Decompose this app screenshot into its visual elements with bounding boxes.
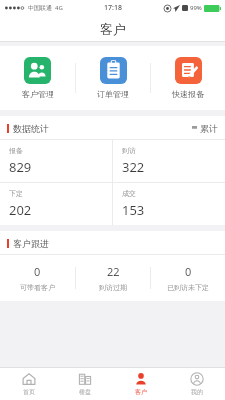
staticText: 客户 xyxy=(100,21,126,37)
staticText: 客户管理 xyxy=(22,89,54,99)
staticText: 报备 xyxy=(9,146,23,155)
staticText: 到访过期 xyxy=(99,283,127,292)
staticText: 快速报备 xyxy=(172,89,204,99)
button[interactable]: 楼盘 xyxy=(57,368,113,400)
staticText: 202 xyxy=(9,201,32,219)
staticText: 可带看客户 xyxy=(20,283,55,292)
staticText: 到访 xyxy=(122,146,136,155)
staticText: 0 xyxy=(34,264,41,279)
staticText: 17:18 xyxy=(104,3,122,13)
staticText: 数据统计 xyxy=(13,123,49,134)
staticText: 首页 xyxy=(23,388,35,396)
button[interactable]: 0 xyxy=(151,255,225,301)
button[interactable]: 累计 xyxy=(192,123,218,134)
button[interactable]: 成交 xyxy=(113,183,225,225)
button[interactable]: 下定 xyxy=(0,183,112,225)
staticText: 322 xyxy=(122,158,145,176)
staticText: 订单管理 xyxy=(97,89,129,99)
button[interactable]: 快速报备 xyxy=(151,46,225,110)
button[interactable]: 我的 xyxy=(169,368,225,400)
staticText: 客户 xyxy=(135,388,147,396)
staticText: 中国联通 xyxy=(28,4,52,12)
staticText: 下定 xyxy=(9,189,23,198)
staticText: 客户跟进 xyxy=(13,238,49,249)
staticText: 4G xyxy=(55,4,63,12)
staticText: 829 xyxy=(9,158,32,176)
staticText: 成交 xyxy=(122,189,136,198)
button[interactable]: 订单管理 xyxy=(76,46,150,110)
button[interactable]: 客户 xyxy=(113,368,169,400)
staticText: 我的 xyxy=(191,388,203,396)
staticText: 累计 xyxy=(200,123,218,134)
button[interactable]: 报备 xyxy=(0,140,112,182)
staticText: 99% xyxy=(190,4,202,12)
staticText: 楼盘 xyxy=(79,388,91,396)
staticText: 153 xyxy=(122,201,145,219)
button[interactable]: 客户管理 xyxy=(0,46,75,110)
button[interactable]: 0 xyxy=(0,255,75,301)
staticText: 0 xyxy=(185,264,192,279)
button[interactable]: 22 xyxy=(76,255,150,301)
staticText: 22 xyxy=(107,264,120,279)
button[interactable]: 首页 xyxy=(0,368,57,400)
button[interactable]: 到访 xyxy=(113,140,225,182)
staticText: 已到访未下定 xyxy=(167,283,209,292)
